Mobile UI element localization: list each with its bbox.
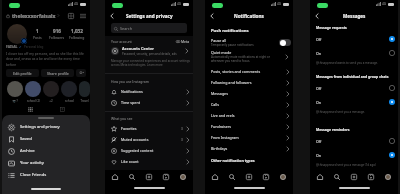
button[interactable]: Create [242, 170, 256, 184]
button[interactable]: Home [208, 170, 222, 184]
staticText: thelexxxorfaisalx [12, 12, 56, 19]
button[interactable]: 📷 ? [7, 81, 23, 103]
button[interactable]: Archive [2, 145, 90, 157]
button[interactable]: Suggested content [105, 145, 193, 156]
staticText: 3 [181, 127, 183, 131]
staticText: 1 [36, 28, 39, 34]
staticText: Fundraisers [211, 124, 232, 129]
staticText: Meta [181, 39, 190, 44]
button[interactable]: Like count [105, 156, 193, 167]
staticText: Posts, stories and comments [211, 69, 261, 74]
button[interactable]: Your activity [2, 157, 90, 169]
button[interactable]: Home [108, 170, 122, 184]
button[interactable]: Create [347, 170, 361, 184]
button[interactable]: Back [313, 12, 321, 20]
staticText: Other notification types [211, 158, 255, 163]
staticText: Settings and privacy [126, 13, 173, 19]
button[interactable]: From Instagram [205, 132, 293, 143]
button[interactable]: Live and reels [205, 110, 293, 121]
button[interactable]: Birthdays [205, 143, 293, 154]
button[interactable]: Posts, stories and comments [205, 66, 293, 77]
staticText: From Instagram [211, 135, 239, 140]
staticText: Saved [20, 136, 32, 142]
button[interactable]: Pause all [205, 37, 293, 48]
button[interactable]: Home [313, 170, 327, 184]
button[interactable]: Create [142, 170, 156, 184]
button[interactable]: Travel [79, 81, 90, 103]
staticText: On [316, 51, 322, 56]
button[interactable]: Search [330, 170, 344, 184]
staticText: Close Friends [20, 172, 47, 178]
staticText: FAISAL [6, 44, 18, 49]
staticText: Manage your connected experiences and ac… [111, 59, 190, 67]
staticText: +2 [49, 99, 53, 103]
staticText: Favorites [121, 126, 137, 131]
staticText: Automatically mute notifications at nigh… [211, 55, 270, 63]
button[interactable]: Tagged [57, 105, 67, 113]
button[interactable]: Settings and privacy [2, 121, 90, 133]
staticText: @thisapproved sent you a message. [316, 110, 365, 114]
staticText: Live and reels [211, 113, 235, 118]
staticText: Off [316, 86, 322, 91]
button[interactable]: Search [125, 170, 139, 184]
staticText: Suggested content [121, 148, 154, 153]
staticText: Following and followers [211, 80, 252, 85]
button[interactable]: Calls [205, 99, 293, 110]
staticText: school [65, 99, 74, 103]
button[interactable]: Notifications [105, 86, 193, 97]
button[interactable]: Quiet mode [205, 50, 293, 63]
staticText: Birthdays [211, 146, 228, 151]
button[interactable]: Following and followers [205, 77, 293, 88]
button[interactable]: Share profile [41, 69, 74, 77]
staticText: 3 [181, 138, 183, 142]
button[interactable]: On [310, 95, 398, 109]
button[interactable]: Search [111, 23, 187, 33]
staticText: Calls [211, 102, 219, 107]
button[interactable]: Off [310, 32, 398, 46]
button[interactable]: Close Friends [2, 169, 90, 181]
staticText: ✔ [19, 45, 22, 48]
button[interactable]: Reels [364, 170, 378, 184]
button[interactable]: Profile [276, 170, 290, 184]
staticText: Pause all [211, 38, 227, 43]
staticText: Notifications [121, 89, 143, 94]
staticText: Like count [121, 159, 139, 164]
button[interactable]: Pause all toggle [279, 39, 291, 46]
staticText: 📷 ? [12, 99, 18, 103]
button[interactable]: Back [208, 12, 216, 20]
button[interactable]: Muted accounts [105, 134, 193, 145]
staticText: 1,032 [71, 28, 83, 34]
button[interactable]: Profile [176, 170, 190, 184]
staticText: I closer too off my persons, and so she … [6, 51, 84, 67]
button[interactable]: Off [310, 81, 398, 95]
button[interactable]: Edit profile [6, 69, 39, 77]
button[interactable]: school (2) [25, 81, 41, 103]
button[interactable]: Time spent [105, 97, 193, 108]
button[interactable]: Favorites [105, 123, 193, 134]
staticText: Search [120, 26, 133, 31]
button[interactable]: Threads [68, 13, 74, 19]
staticText: Messages from individual and group chats [316, 74, 389, 79]
button[interactable]: On [310, 148, 398, 162]
button[interactable]: Accounts Center [105, 45, 193, 57]
staticText: Edit profile [13, 71, 32, 76]
button[interactable]: +2 [43, 81, 59, 103]
button[interactable]: school [61, 81, 77, 103]
button[interactable]: On [310, 46, 398, 60]
button[interactable]: Profile [381, 170, 395, 184]
button[interactable]: Reels [259, 170, 273, 184]
button[interactable]: Messages [205, 88, 293, 99]
staticText: Message reminders [316, 127, 350, 132]
staticText: Messages [343, 13, 366, 19]
staticText: On [316, 100, 322, 105]
button[interactable]: Search [225, 170, 239, 184]
button[interactable]: Off [310, 134, 398, 148]
button[interactable]: Back [108, 12, 116, 20]
button[interactable]: Grid [25, 105, 35, 113]
button[interactable]: Menu [80, 13, 86, 19]
button[interactable]: Fundraisers [205, 121, 293, 132]
button[interactable]: Add people [76, 69, 86, 77]
button[interactable]: Saved [2, 133, 90, 145]
staticText: Posts [33, 35, 42, 40]
button[interactable]: Reels [159, 170, 173, 184]
